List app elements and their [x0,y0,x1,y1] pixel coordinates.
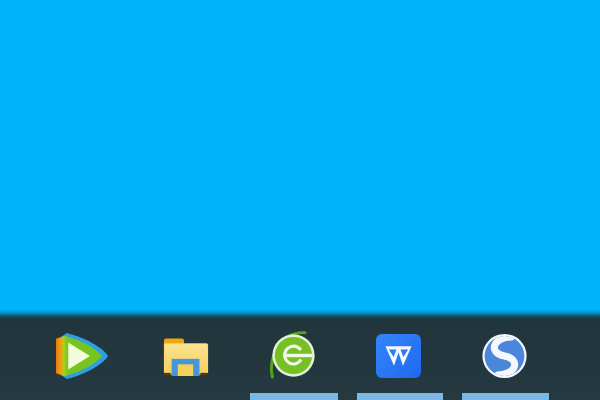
button[interactable]: File explorer [162,337,210,376]
button[interactable]: Browser [271,333,316,378]
button[interactable]: Video player [55,332,108,380]
button[interactable]: Sogou input [481,331,528,381]
button[interactable]: WPS Office [376,334,421,378]
